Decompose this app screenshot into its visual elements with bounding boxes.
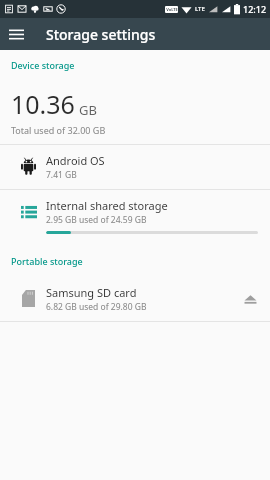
staticText: GB bbox=[79, 101, 97, 119]
staticText: LTE bbox=[195, 5, 205, 13]
staticText: VoLTE bbox=[166, 7, 178, 12]
staticText: Total used of 32.00 GB bbox=[11, 124, 106, 136]
staticText: Internal shared storage bbox=[46, 198, 168, 213]
staticText: Device storage bbox=[11, 59, 75, 71]
button[interactable]: Samsung SD card bbox=[0, 277, 270, 321]
staticText: 2.95 GB used of 24.59 GB bbox=[46, 214, 147, 226]
staticText: 6.82 GB used of 29.80 GB bbox=[46, 301, 147, 313]
button[interactable]: Android OS bbox=[0, 145, 270, 189]
staticText: 10.36 bbox=[11, 87, 75, 121]
staticText: Android OS bbox=[46, 153, 105, 168]
staticText: 7.41 GB bbox=[46, 169, 77, 181]
staticText: Samsung SD card bbox=[46, 285, 137, 300]
staticText: Storage settings bbox=[46, 25, 156, 44]
staticText: 12:12 bbox=[243, 3, 267, 15]
button[interactable]: Open navigation menu bbox=[0, 18, 32, 50]
button[interactable]: Eject SD card bbox=[236, 285, 264, 313]
staticText: Portable storage bbox=[11, 255, 83, 267]
button[interactable]: Internal shared storage bbox=[0, 190, 270, 244]
